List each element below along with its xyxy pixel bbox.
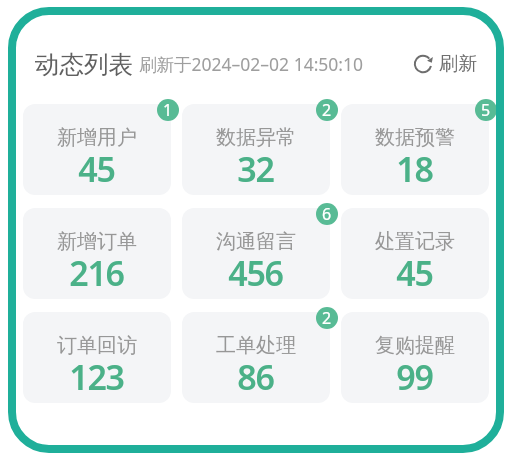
- staticText: 86: [237, 354, 274, 399]
- button[interactable]: 订单回访: [23, 312, 171, 403]
- staticText: 新增用户: [57, 125, 137, 150]
- staticText: 数据异常: [216, 125, 296, 150]
- staticText: 18: [396, 146, 433, 191]
- staticText: 2: [322, 99, 332, 121]
- button[interactable]: 沟通留言: [182, 208, 330, 299]
- staticText: 工单处理: [216, 333, 296, 358]
- other: Refresh: [413, 54, 433, 74]
- staticText: 数据预警: [375, 125, 455, 150]
- staticText: 处置记录: [375, 229, 455, 254]
- staticText: 刷新: [439, 52, 477, 76]
- staticText: 99: [396, 354, 433, 399]
- staticText: 刷新于2024–02–02 14:50:10: [139, 52, 364, 76]
- button[interactable]: 数据异常: [182, 104, 330, 195]
- staticText: 1: [163, 99, 173, 121]
- button[interactable]: 工单处理: [182, 312, 330, 403]
- staticText: 6: [322, 203, 332, 225]
- staticText: 123: [69, 354, 124, 399]
- staticText: 45: [396, 250, 433, 295]
- staticText: 订单回访: [57, 333, 137, 358]
- button[interactable]: 数据预警: [341, 104, 489, 195]
- staticText: 45: [78, 146, 115, 191]
- button[interactable]: 新增订单: [23, 208, 171, 299]
- staticText: 复购提醒: [375, 333, 455, 358]
- staticText: 456: [228, 250, 283, 295]
- staticText: 新增订单: [57, 229, 137, 254]
- staticText: 32: [237, 146, 274, 191]
- staticText: 216: [69, 250, 124, 295]
- staticText: 沟通留言: [216, 229, 296, 254]
- button[interactable]: Refresh: [411, 49, 477, 79]
- button[interactable]: 处置记录: [341, 208, 489, 299]
- staticText: 5: [481, 99, 491, 121]
- button[interactable]: 复购提醒: [341, 312, 489, 403]
- button[interactable]: 新增用户: [23, 104, 171, 195]
- staticText: 2: [322, 307, 332, 329]
- staticText: 动态列表: [35, 49, 133, 80]
